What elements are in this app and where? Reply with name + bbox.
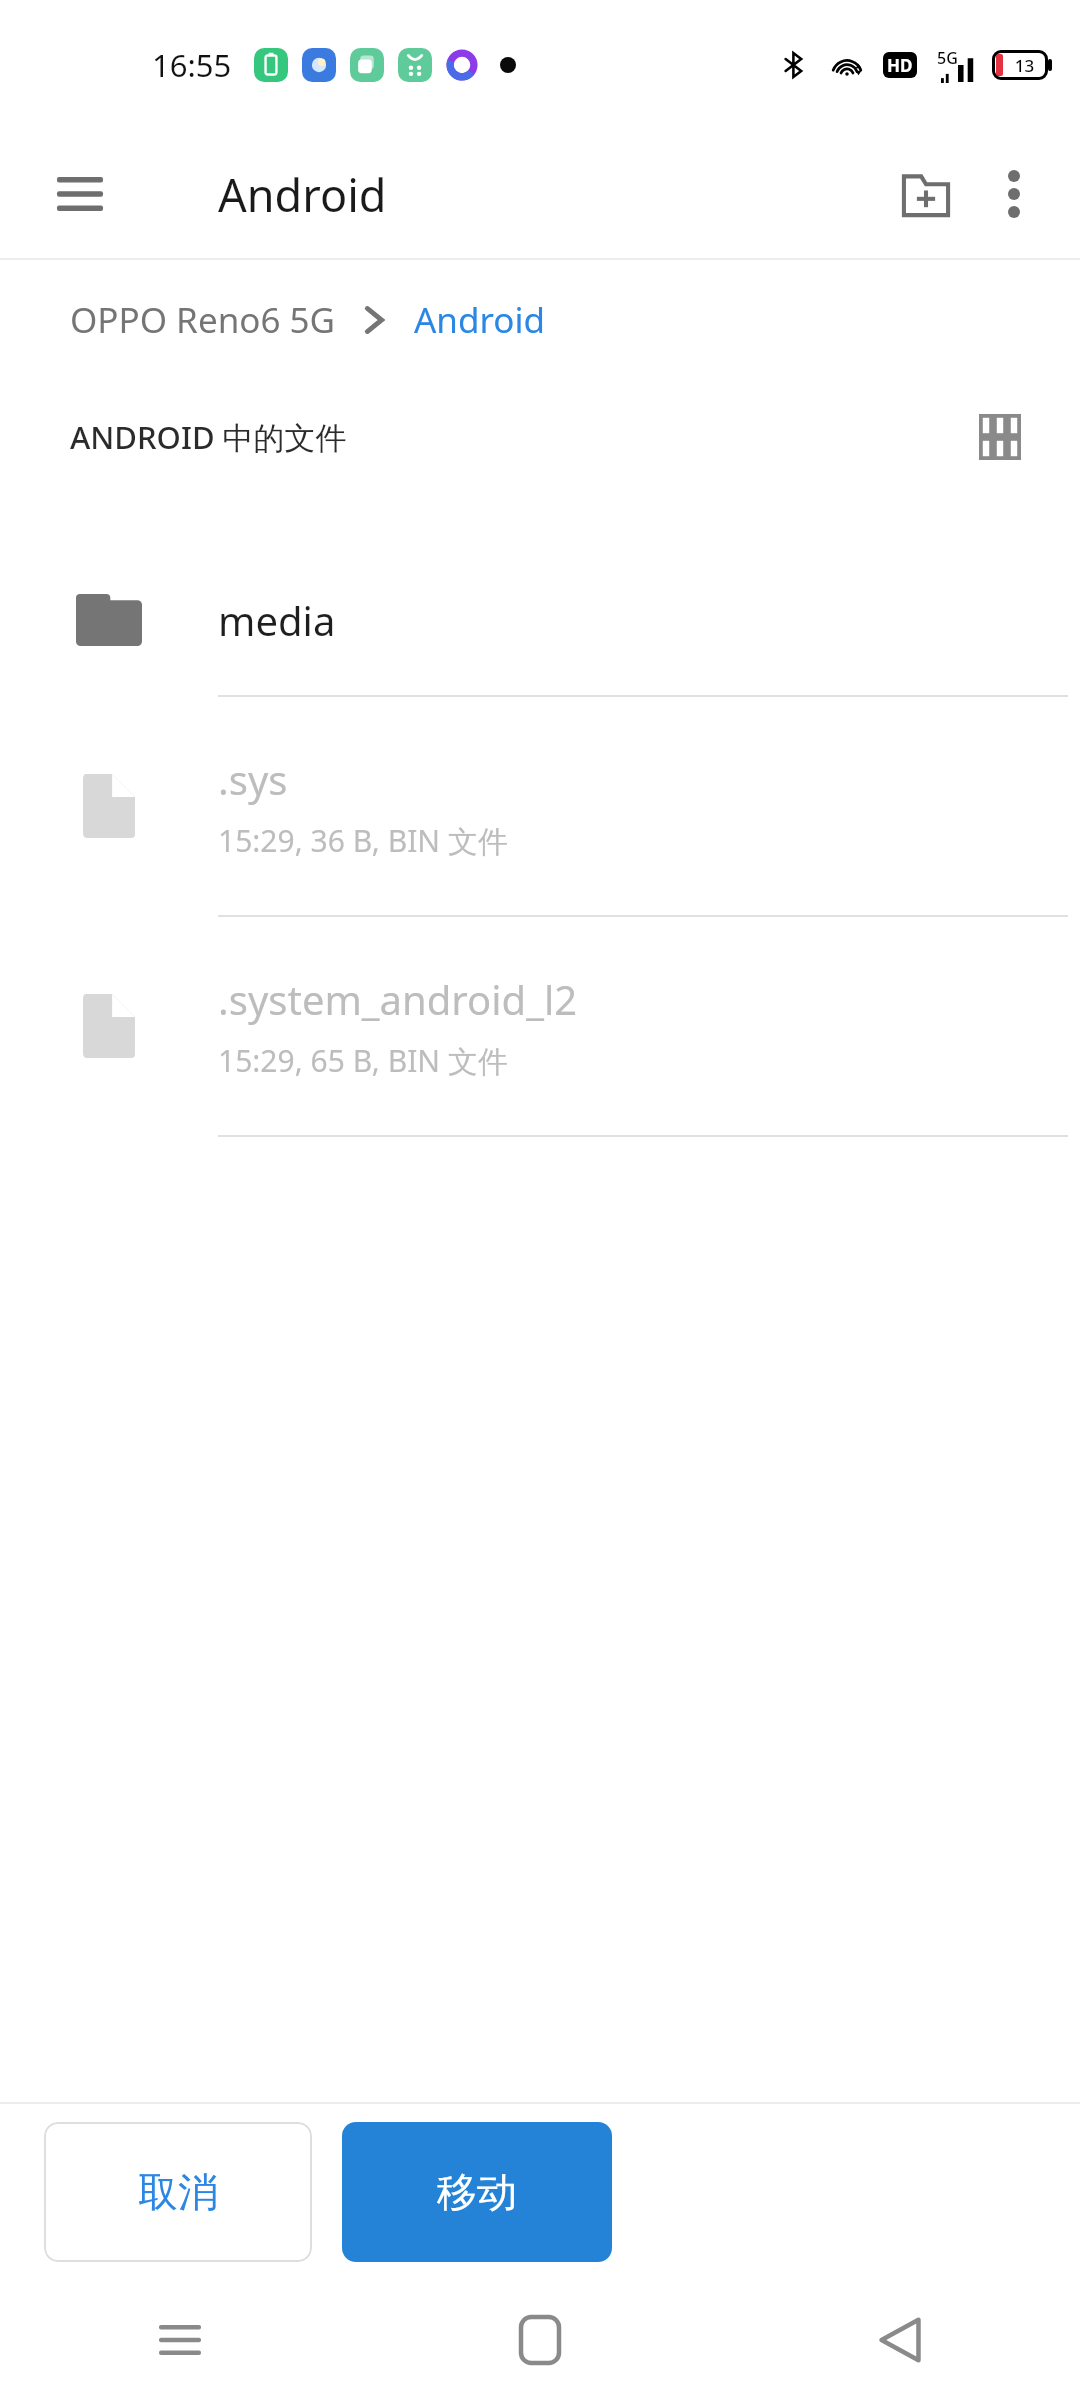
staticText: OPPO Reno6 5G bbox=[70, 296, 336, 344]
button[interactable]: OPPO Reno6 5G bbox=[70, 296, 336, 344]
button[interactable]: More options bbox=[970, 150, 1058, 238]
button[interactable]: .sys bbox=[0, 697, 1080, 917]
staticText: 13 bbox=[1005, 54, 1044, 76]
staticText: Android bbox=[414, 296, 546, 344]
staticText: .sys bbox=[218, 752, 288, 806]
button[interactable]: media bbox=[0, 545, 1080, 697]
button[interactable]: 取消 bbox=[44, 2122, 312, 2262]
staticText: media bbox=[218, 593, 336, 647]
button[interactable]: Switch to grid view bbox=[960, 397, 1040, 477]
staticText: 5G bbox=[937, 47, 958, 69]
button[interactable]: Open navigation drawer bbox=[44, 158, 116, 230]
button[interactable]: .system_android_l2 bbox=[0, 917, 1080, 1137]
staticText: ANDROID 中的文件 bbox=[70, 416, 347, 458]
button[interactable]: Recent apps bbox=[0, 2280, 360, 2400]
button[interactable]: Android bbox=[414, 296, 546, 344]
staticText: 16:55 bbox=[152, 44, 232, 86]
staticText: 15:29, 36 B, BIN 文件 bbox=[218, 820, 508, 861]
staticText: 15:29, 65 B, BIN 文件 bbox=[218, 1040, 508, 1081]
staticText: 取消 bbox=[138, 2167, 218, 2217]
staticText: 移动 bbox=[437, 2167, 517, 2217]
staticText: .system_android_l2 bbox=[218, 972, 578, 1026]
button[interactable]: Create new folder bbox=[882, 150, 970, 238]
staticText: Android bbox=[218, 164, 387, 225]
button[interactable]: Back bbox=[720, 2280, 1080, 2400]
button[interactable]: Home bbox=[360, 2280, 720, 2400]
staticText: HD bbox=[887, 54, 913, 77]
button[interactable]: 移动 bbox=[342, 2122, 612, 2262]
